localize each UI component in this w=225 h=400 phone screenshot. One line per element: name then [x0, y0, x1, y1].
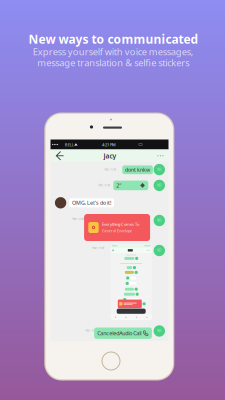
staticText: 2'' — [116, 182, 121, 189]
staticText: Express yourself with voice messages, — [33, 45, 194, 58]
button[interactable]: Everything Comes To — [84, 214, 150, 241]
staticText: ND — [157, 249, 161, 252]
staticText: ND — [157, 184, 161, 187]
staticText: Jacy — [103, 151, 116, 160]
staticText: BELL — [65, 142, 74, 147]
staticText: Have read — [97, 183, 110, 187]
staticText: message translation & selfie stickers — [37, 56, 189, 69]
button[interactable]: CanceledAudio Call — [94, 327, 152, 339]
button[interactable] — [111, 244, 152, 320]
staticText: ND — [157, 329, 161, 333]
staticText: General Envelope — [102, 228, 132, 233]
staticText: Have read — [84, 329, 97, 332]
staticText: Have read — [103, 168, 116, 171]
staticText: Have read — [91, 246, 104, 250]
button[interactable]: OMG, Let's do it! — [69, 198, 114, 207]
staticText: Everything Comes To — [102, 222, 139, 227]
staticText: dont knkw — [125, 166, 150, 173]
staticText: ND — [157, 168, 161, 171]
staticText: OMG, Let's do it! — [72, 199, 111, 206]
staticText: ND — [157, 219, 161, 222]
staticText: Have read — [71, 217, 84, 221]
button[interactable]: 2'' — [113, 181, 148, 190]
button[interactable]: dont knkw — [122, 165, 153, 174]
staticText: 4:21 PM — [102, 142, 116, 147]
staticText: CanceledAudio Call — [97, 330, 141, 337]
button[interactable]: More options — [154, 150, 166, 162]
staticText: New ways to communicated — [28, 31, 198, 47]
button[interactable]: Back — [52, 150, 68, 162]
